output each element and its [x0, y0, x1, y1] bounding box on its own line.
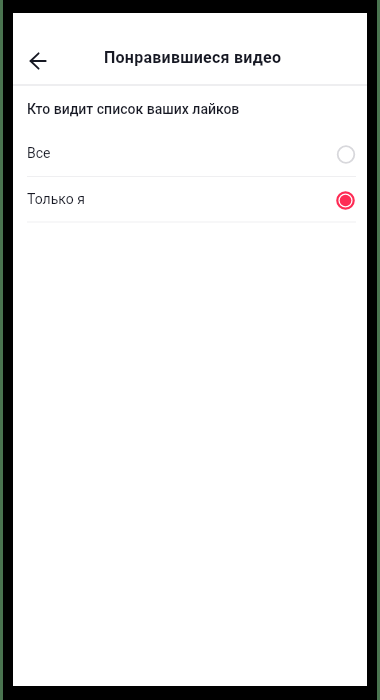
staticText: Понравившиеся видео [104, 48, 282, 67]
staticText: Только я [27, 191, 85, 207]
staticText: Кто видит список ваших лайков [27, 101, 240, 117]
staticText: Все [27, 145, 51, 161]
